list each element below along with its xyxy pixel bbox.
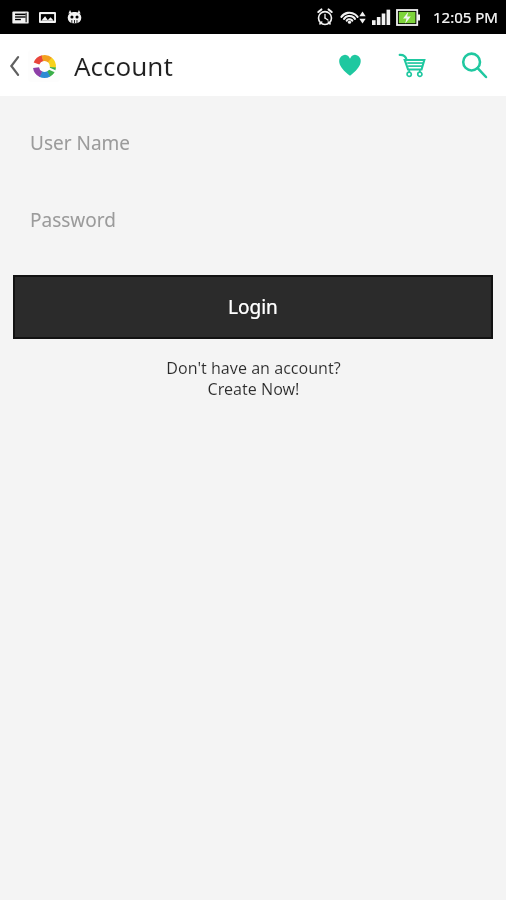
- button[interactable]: Don't have an account? Create Now!: [0, 357, 506, 400]
- staticText: Don't have an account? Create Now!: [166, 357, 341, 400]
- button[interactable]: User Name: [0, 126, 506, 160]
- button[interactable]: Cart: [392, 45, 432, 85]
- button[interactable]: Password: [0, 203, 506, 237]
- button[interactable]: Favorites: [330, 45, 370, 85]
- staticText: Account: [74, 48, 173, 83]
- button[interactable]: Search: [454, 45, 494, 85]
- staticText: 12:05 PM: [433, 7, 498, 27]
- button[interactable]: Login: [13, 275, 493, 339]
- staticText: Password: [30, 207, 116, 233]
- staticText: Login: [228, 294, 278, 320]
- staticText: User Name: [30, 130, 131, 156]
- button[interactable]: Back: [4, 50, 64, 82]
